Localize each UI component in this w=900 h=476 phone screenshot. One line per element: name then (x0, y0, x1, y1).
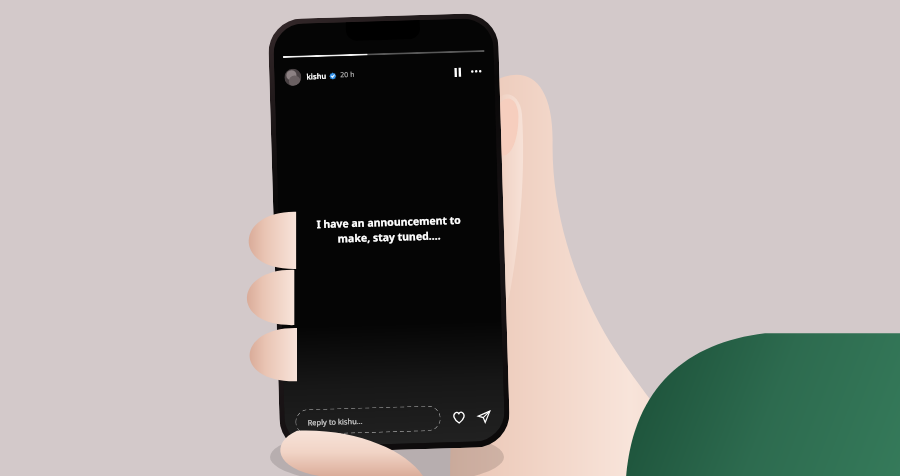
staticText: Reply to kishu… (307, 416, 364, 427)
button[interactable]: Like (448, 407, 469, 427)
button[interactable]: More options (468, 63, 484, 80)
button[interactable]: Profile photo, kishu (284, 68, 302, 86)
other: Verified (329, 72, 336, 80)
button[interactable]: Pause (449, 64, 465, 80)
button[interactable]: Send (473, 406, 494, 427)
staticText: I have an announcement to make, stay tun… (294, 212, 483, 247)
staticText: 20 h (340, 70, 355, 80)
button[interactable]: kishu (306, 71, 326, 81)
button[interactable]: Reply to kishu… (295, 406, 441, 435)
